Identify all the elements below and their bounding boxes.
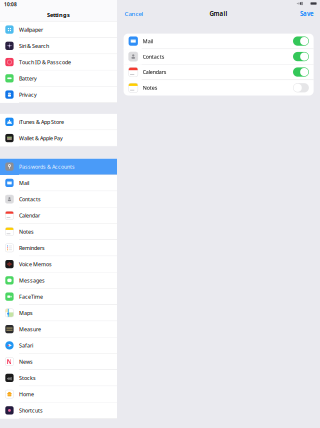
staticText: Wallet & Apple Pay — [19, 134, 63, 142]
button[interactable]: N — [0, 354, 117, 370]
staticText: Safari — [19, 342, 33, 349]
button[interactable]: Wallpaper — [0, 22, 117, 38]
button[interactable]: Save — [300, 10, 314, 18]
staticText: Privacy — [19, 91, 37, 98]
button[interactable]: Calendars — [124, 65, 314, 80]
staticText: Mail — [19, 179, 29, 186]
staticText: News — [19, 358, 33, 365]
staticText: Mail — [143, 37, 153, 45]
button[interactable]: Touch ID & Passcode — [0, 54, 117, 70]
staticText: Contacts — [19, 196, 41, 203]
staticText: Notes — [143, 84, 158, 91]
button[interactable]: Measure — [0, 321, 117, 337]
staticText: Home — [19, 391, 34, 398]
button[interactable]: Mail — [0, 175, 117, 191]
staticText: FaceTime — [19, 293, 43, 300]
staticText: Cancel — [124, 10, 143, 18]
staticText: Stocks — [19, 374, 36, 381]
button[interactable]: Voice Memos — [0, 256, 117, 272]
staticText: Maps — [19, 309, 33, 316]
button[interactable]: Home — [0, 386, 117, 402]
button[interactable]: Privacy — [0, 87, 117, 103]
button[interactable]: Calendar — [0, 207, 117, 224]
staticText: Voice Memos — [19, 261, 52, 268]
staticText: Calendars — [143, 68, 167, 76]
button[interactable]: Reminders — [0, 240, 117, 256]
staticText: Gmail — [209, 10, 227, 18]
staticText: Siri & Search — [19, 42, 49, 49]
button[interactable]: Stocks — [0, 370, 117, 386]
button[interactable]: Maps — [0, 305, 117, 321]
button[interactable]: Battery — [0, 70, 117, 87]
staticText: Passwords & Accounts — [19, 163, 75, 170]
staticText: Save — [300, 10, 314, 18]
button[interactable]: Shortcuts — [0, 402, 117, 419]
staticText: iTunes & App Store — [19, 118, 64, 125]
staticText: Measure — [19, 326, 41, 333]
button[interactable]: Notes — [124, 80, 314, 95]
staticText: Calendar — [19, 212, 40, 219]
button[interactable]: Contacts — [0, 191, 117, 207]
button[interactable]: FaceTime — [0, 289, 117, 305]
staticText: Shortcuts — [19, 407, 43, 414]
staticText: Touch ID & Passcode — [19, 58, 71, 66]
staticText: Settings — [47, 11, 70, 18]
staticText: Battery — [19, 75, 37, 82]
button[interactable]: Cancel — [124, 10, 143, 18]
staticText: Wallpaper — [19, 26, 43, 33]
button[interactable]: Passwords & Accounts — [0, 159, 117, 175]
staticText: Reminders — [19, 244, 45, 251]
staticText: N — [6, 357, 12, 366]
staticText: 10:08 — [4, 1, 17, 8]
button[interactable]: Safari — [0, 337, 117, 354]
button[interactable]: Messages — [0, 272, 117, 289]
button[interactable]: Mail — [124, 34, 314, 49]
staticText: Contacts — [143, 53, 165, 60]
staticText: Notes — [19, 228, 34, 235]
staticText: Messages — [19, 277, 45, 284]
button[interactable]: Siri & Search — [0, 38, 117, 54]
button[interactable]: iTunes & App Store — [0, 114, 117, 130]
button[interactable]: Wallet & Apple Pay — [0, 130, 117, 146]
button[interactable]: Notes — [0, 224, 117, 240]
button[interactable]: Contacts — [124, 49, 314, 65]
